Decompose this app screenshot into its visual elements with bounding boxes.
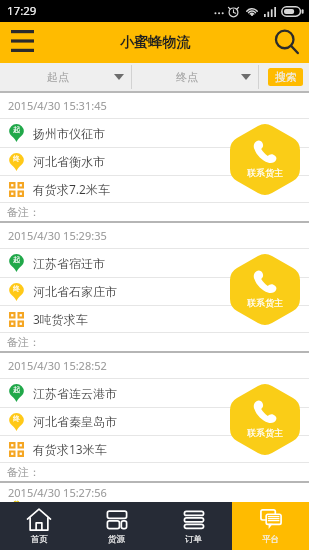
button[interactable]: 联系货主 [230,382,300,457]
button[interactable]: 首页 [0,502,78,550]
staticText: 首页 [31,534,48,545]
staticText: 17:29 [7,3,37,19]
staticText: 有货求13米车 [33,441,107,457]
button[interactable]: 平台 [232,502,309,550]
button[interactable]: 订单 [155,502,232,550]
button[interactable]: 联系货主 [230,252,300,327]
staticText: 2015/4/30 15:28:52 [8,358,107,373]
staticText: 有货求7.2米车 [33,181,110,197]
staticText: 起 [13,255,20,264]
staticText: 小蜜蜂物流 [120,34,190,52]
staticText: 订单 [185,534,202,545]
staticText: 备注： [7,335,40,349]
staticText: 平台 [262,534,279,545]
staticText: 联系货主 [247,167,283,178]
button[interactable]: 2015/4/30 15:31:45 [0,93,309,223]
button[interactable]: 2015/4/30 15:27:56 [0,483,309,502]
staticText: 2015/4/30 15:29:35 [8,228,107,243]
button[interactable]: Search [265,22,309,63]
staticText: 江苏省连云港市 [33,386,117,401]
button[interactable]: Menu [0,22,44,63]
staticText: 2015/4/30 15:27:56 [8,485,107,500]
staticText: 搜索 [275,70,297,84]
button[interactable]: 2015/4/30 15:28:52 [0,353,309,483]
button[interactable]: 联系货主 [230,512,300,531]
staticText: 江苏省宿迁市 [33,256,105,271]
staticText: 联系货主 [247,427,283,438]
staticText: 河北省秦皇岛市 [33,414,117,429]
button[interactable]: 联系货主 [230,122,300,197]
staticText: 3吨货求车 [33,311,88,327]
staticText: 2015/4/30 15:31:45 [8,98,107,113]
staticText: 起 [13,125,20,134]
staticText: 终 [13,154,20,163]
button[interactable]: 2015/4/30 15:29:35 [0,223,309,353]
staticText: 扬州市仪征市 [33,126,105,141]
button[interactable]: 搜索 [268,68,303,86]
staticText: 终点 [176,70,198,84]
staticText: 终 [13,414,20,423]
button[interactable]: 终点 [132,63,258,91]
staticText: 备注： [7,205,40,219]
staticText: 备注： [7,465,40,479]
staticText: 联系货主 [247,297,283,308]
staticText: 货源 [108,534,125,545]
staticText: 起 [13,385,20,394]
staticText: 起点 [47,70,69,84]
staticText: 终 [13,284,20,293]
button[interactable]: 货源 [78,502,155,550]
staticText: 河北省石家庄市 [33,284,117,299]
staticText: 河北省衡水市 [33,154,105,169]
button[interactable]: 起点 [0,63,131,91]
